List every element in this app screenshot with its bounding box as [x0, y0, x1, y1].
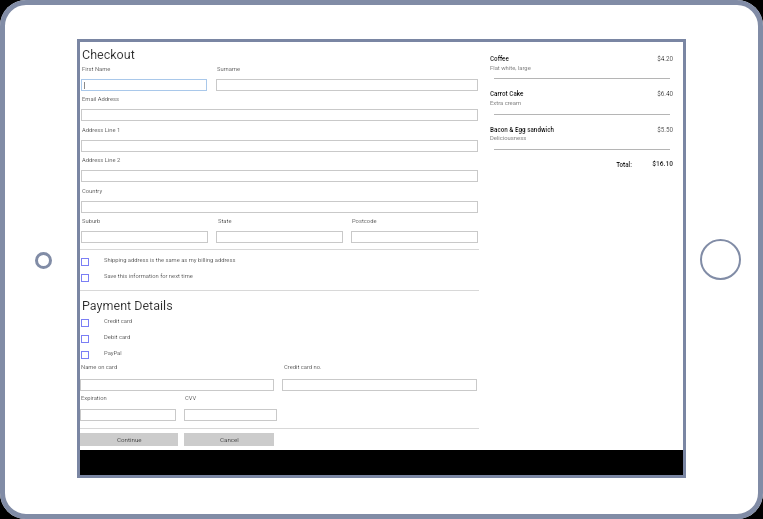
button[interactable] — [80, 409, 176, 421]
button[interactable] — [81, 79, 207, 91]
button[interactable]: Save this information for next time — [79, 270, 209, 285]
staticText: PayPal — [104, 350, 122, 357]
staticText: Expiration — [81, 395, 107, 402]
button[interactable] — [81, 140, 478, 152]
staticText: Extra cream — [490, 100, 522, 107]
staticText: $16.10 — [490, 160, 673, 168]
button[interactable]: PayPal — [79, 347, 189, 362]
staticText: $5.50 — [490, 126, 673, 133]
staticText: Deliciousness — [490, 135, 527, 142]
button[interactable] — [184, 409, 277, 421]
button[interactable]: Home button — [700, 239, 741, 280]
staticText: Name on card — [81, 364, 118, 371]
button[interactable] — [81, 170, 478, 182]
staticText: Address Line 1 — [82, 127, 121, 134]
staticText: Flat white, large — [490, 65, 531, 72]
staticText: Credit card — [104, 318, 133, 325]
staticText: CVV — [185, 395, 197, 402]
button[interactable] — [216, 79, 478, 91]
button[interactable] — [81, 109, 478, 121]
staticText: Coffee — [490, 55, 509, 62]
button[interactable] — [351, 231, 478, 243]
staticText: Total: — [490, 161, 632, 168]
staticText: Cancel — [220, 436, 239, 443]
staticText: Surname — [217, 66, 241, 73]
staticText: Checkout — [82, 47, 135, 62]
staticText: Continue — [117, 436, 142, 443]
staticText: State — [218, 218, 232, 225]
staticText: Credit card no. — [284, 364, 322, 371]
staticText: Carrot Cake — [490, 90, 524, 97]
staticText: Country — [82, 188, 103, 195]
button[interactable]: Continue — [80, 433, 178, 446]
button[interactable] — [216, 231, 343, 243]
staticText: Payment Details — [82, 298, 173, 313]
button[interactable]: Shipping address is the same as my billi… — [79, 254, 239, 269]
staticText: Suburb — [82, 218, 101, 225]
staticText: Save this information for next time — [104, 273, 193, 280]
staticText: Debit card — [104, 334, 131, 341]
staticText: $6.40 — [490, 90, 673, 97]
button[interactable] — [282, 379, 477, 391]
button[interactable]: Cancel — [184, 433, 274, 446]
button[interactable] — [81, 201, 478, 213]
button[interactable]: Side button — [35, 252, 52, 269]
staticText: Bacon & Egg sandwich — [490, 126, 555, 133]
staticText: Email Address — [82, 96, 120, 103]
button[interactable]: Debit card — [79, 331, 189, 346]
staticText: Address Line 2 — [82, 157, 121, 164]
button[interactable]: Credit card — [79, 315, 189, 330]
staticText: Shipping address is the same as my billi… — [104, 257, 236, 264]
staticText: First Name — [82, 66, 111, 73]
button[interactable] — [80, 379, 274, 391]
staticText: Postcode — [352, 218, 377, 225]
button[interactable] — [81, 231, 208, 243]
staticText: $4.20 — [490, 55, 673, 62]
